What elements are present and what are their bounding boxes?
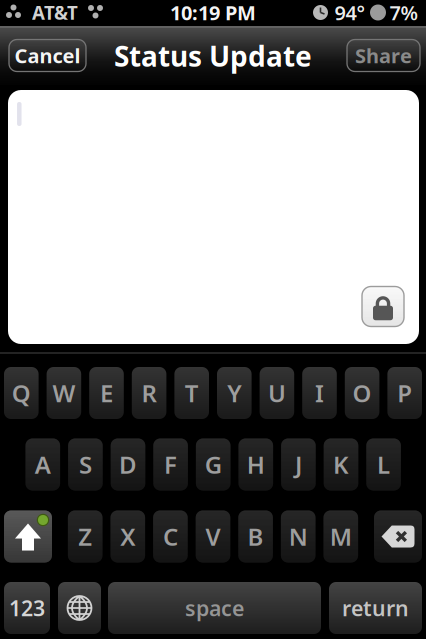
- button[interactable]: 123: [4, 582, 50, 634]
- staticText: Share: [355, 42, 412, 69]
- staticText: W: [52, 377, 75, 409]
- button[interactable]: A: [25, 438, 60, 490]
- staticText: 94°: [334, 0, 365, 26]
- staticText: L: [377, 449, 390, 480]
- button[interactable]: [374, 510, 422, 562]
- staticText: B: [248, 521, 264, 552]
- button[interactable]: H: [238, 438, 273, 490]
- button[interactable]: Z: [68, 510, 102, 562]
- button[interactable]: F: [153, 438, 188, 490]
- button[interactable]: [58, 582, 101, 634]
- staticText: F: [164, 449, 177, 480]
- staticText: N: [289, 521, 308, 552]
- button[interactable]: Cancel: [9, 39, 86, 71]
- button[interactable]: V: [196, 510, 230, 562]
- button[interactable]: P: [387, 367, 422, 419]
- staticText: 7%: [389, 0, 418, 26]
- staticText: T: [185, 377, 199, 409]
- button[interactable]: U: [260, 367, 294, 419]
- button[interactable]: Q: [4, 367, 39, 419]
- button[interactable]: Y: [217, 367, 252, 419]
- button[interactable]: E: [89, 367, 124, 419]
- staticText: 10:19 PM: [170, 0, 256, 26]
- button[interactable]: Share: [347, 39, 420, 71]
- button[interactable]: space: [108, 582, 321, 634]
- staticText: P: [397, 377, 412, 409]
- staticText: space: [185, 594, 244, 622]
- staticText: V: [205, 521, 220, 552]
- staticText: M: [330, 521, 352, 552]
- staticText: H: [247, 449, 265, 480]
- button[interactable]: I: [302, 367, 337, 419]
- button[interactable]: return: [329, 582, 422, 634]
- staticText: E: [100, 377, 113, 409]
- staticText: I: [315, 377, 324, 409]
- staticText: A: [35, 449, 51, 480]
- button[interactable]: T: [174, 367, 209, 419]
- staticText: 123: [9, 594, 45, 622]
- staticText: S: [79, 449, 92, 480]
- staticText: AT&T: [32, 0, 78, 25]
- button[interactable]: [362, 286, 404, 326]
- button[interactable]: B: [238, 510, 273, 562]
- button[interactable]: S: [68, 438, 103, 490]
- button[interactable]: R: [132, 367, 166, 419]
- staticText: U: [268, 377, 286, 409]
- staticText: Status Update: [114, 37, 312, 75]
- button[interactable]: J: [281, 438, 316, 490]
- button[interactable]: [4, 510, 52, 562]
- button[interactable]: K: [324, 438, 358, 490]
- button[interactable]: C: [153, 510, 188, 562]
- staticText: X: [120, 521, 135, 552]
- staticText: R: [142, 377, 157, 409]
- staticText: D: [119, 449, 137, 480]
- staticText: O: [353, 377, 372, 409]
- staticText: return: [342, 594, 409, 622]
- staticText: Y: [227, 377, 241, 409]
- staticText: G: [205, 449, 222, 480]
- button[interactable]: D: [111, 438, 145, 490]
- button[interactable]: N: [281, 510, 315, 562]
- button[interactable]: M: [323, 510, 358, 562]
- button[interactable]: G: [196, 438, 230, 490]
- staticText: C: [163, 521, 178, 552]
- button[interactable]: O: [345, 367, 379, 419]
- button[interactable]: W: [47, 367, 81, 419]
- button[interactable]: X: [110, 510, 145, 562]
- staticText: Z: [78, 521, 92, 552]
- staticText: J: [295, 449, 302, 480]
- button[interactable]: L: [366, 438, 401, 490]
- staticText: Q: [12, 377, 31, 409]
- staticText: Cancel: [14, 42, 80, 69]
- staticText: K: [333, 449, 349, 480]
